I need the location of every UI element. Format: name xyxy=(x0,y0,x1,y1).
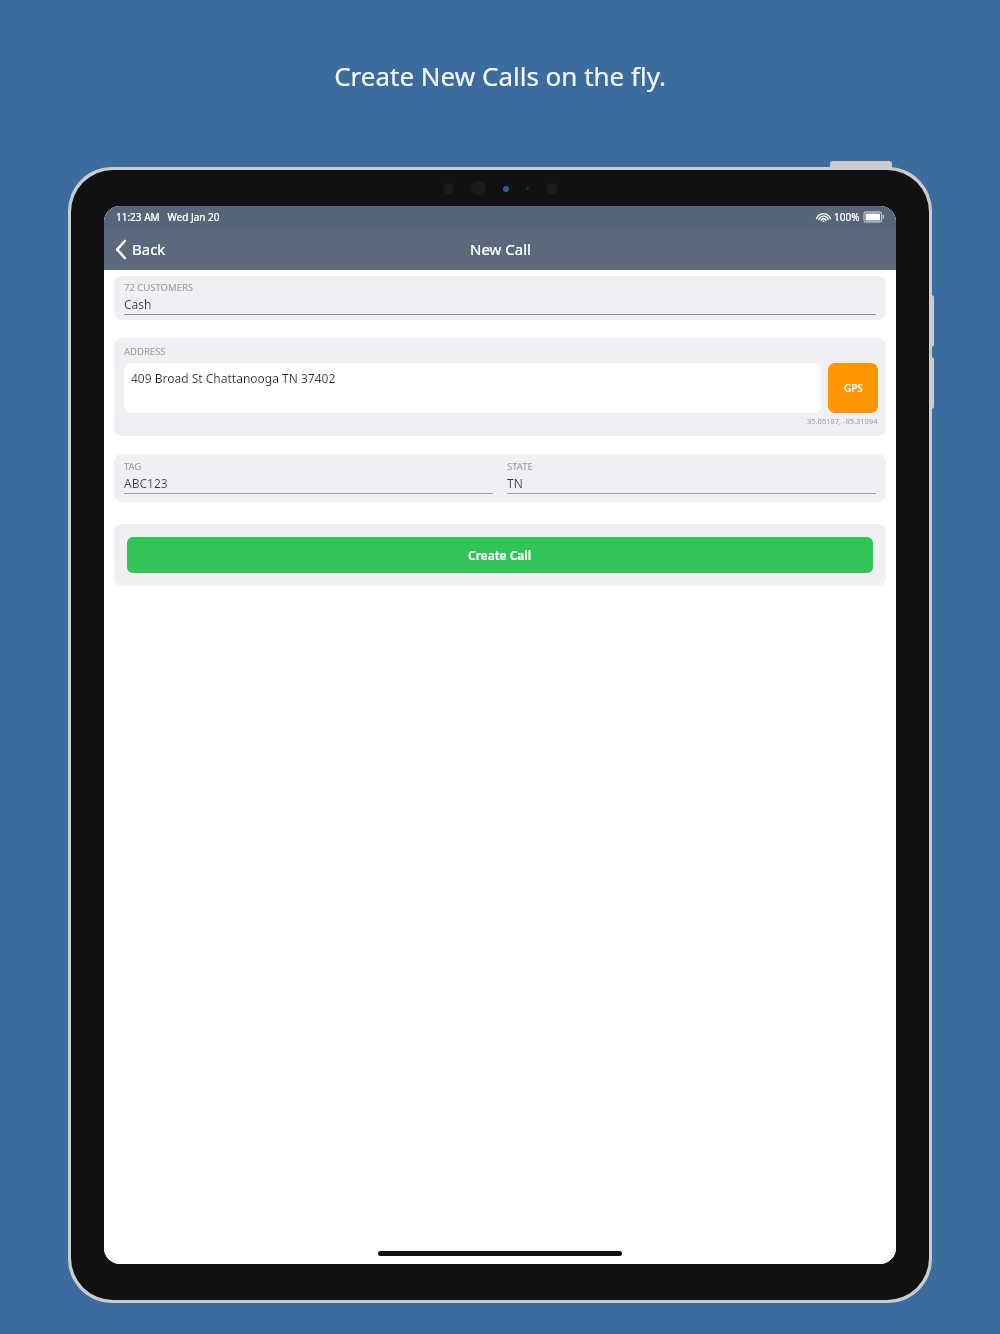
staticText: New Call xyxy=(470,239,531,259)
staticText: 72 CUSTOMERS xyxy=(124,281,194,294)
staticText: Cash xyxy=(124,296,152,312)
staticText: 409 Broad St Chattanooga TN 37402 xyxy=(131,370,336,386)
staticText: 100% xyxy=(834,210,860,224)
staticText: Create Call xyxy=(468,547,532,563)
button[interactable]: Back xyxy=(112,233,170,265)
staticText: Create New Calls on the fly. xyxy=(334,58,666,93)
staticText: TAG xyxy=(124,460,142,473)
button[interactable]: 72 CUSTOMERS xyxy=(114,276,886,320)
staticText: TN xyxy=(507,475,523,491)
button[interactable]: Create Call xyxy=(127,537,873,573)
button[interactable]: 409 Broad St Chattanooga TN 37402 xyxy=(124,363,821,413)
staticText: Back xyxy=(132,239,166,259)
button[interactable]: STATE xyxy=(507,460,876,494)
button[interactable]: TAG xyxy=(124,460,493,494)
staticText: ABC123 xyxy=(124,475,168,491)
staticText: 11:23 AM Wed Jan 20 xyxy=(116,210,220,224)
staticText: STATE xyxy=(507,460,533,473)
button[interactable]: Use GPS location xyxy=(828,363,878,413)
staticText: 35.05187, -85.31094 xyxy=(807,416,878,426)
staticText: GPS xyxy=(844,381,863,395)
staticText: ADDRESS xyxy=(124,345,166,358)
